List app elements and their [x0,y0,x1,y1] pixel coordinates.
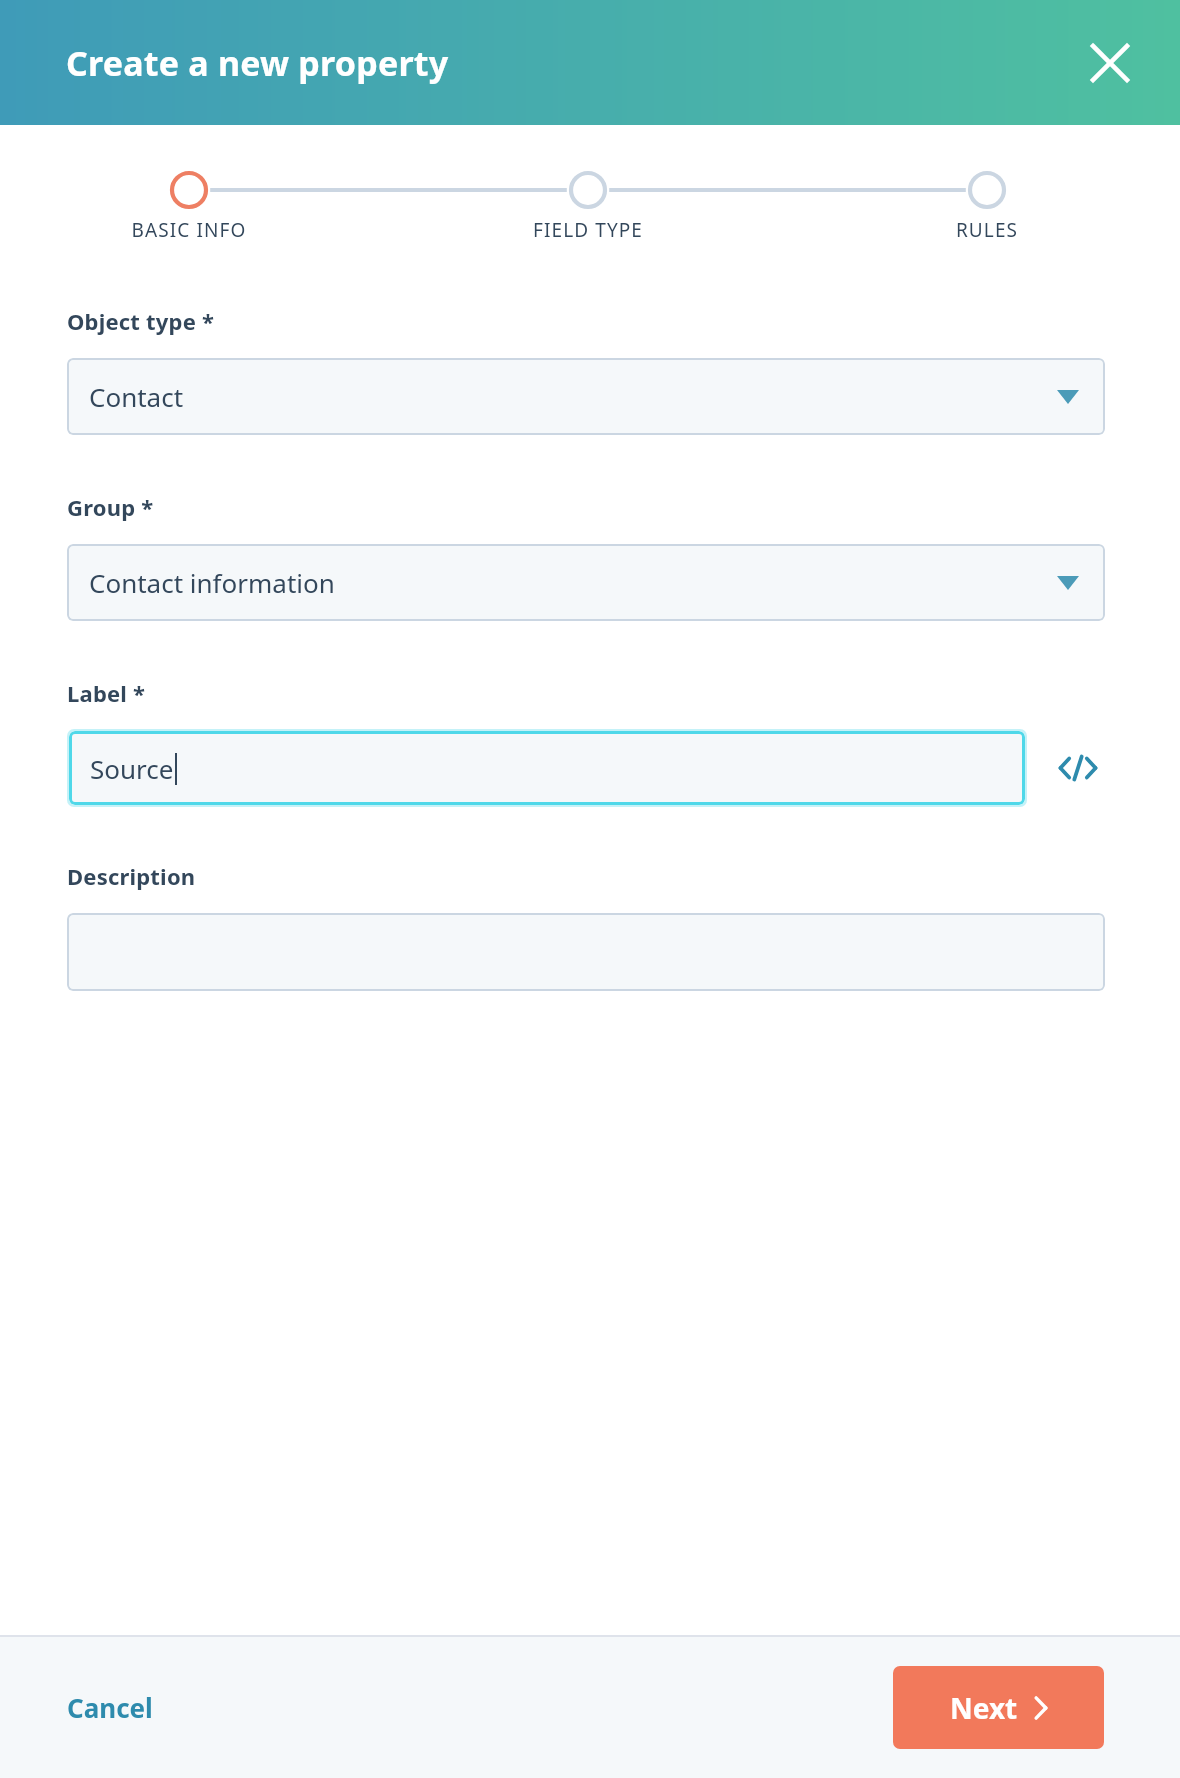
staticText: Object type * [67,306,215,336]
staticText: Next [950,1689,1018,1727]
button[interactable]: RULES [869,217,1105,243]
staticText: RULES [869,217,1105,243]
button[interactable]: Contact [67,358,1105,435]
button[interactable]: Next [893,1666,1104,1749]
staticText: Contact [89,379,1057,414]
staticText: BASIC INFO [71,217,307,243]
button[interactable]: FIELD TYPE [470,217,706,243]
button[interactable]: Close [1082,35,1138,91]
button[interactable]: Insert personalization token [1051,741,1105,795]
button[interactable]: BASIC INFO [71,217,307,243]
button[interactable]: Source [69,731,1025,805]
staticText: Source [90,751,174,786]
staticText: Contact information [89,565,1057,600]
staticText: Description [67,861,196,891]
staticText: Create a new property [66,40,449,86]
button[interactable]: Contact information [67,544,1105,621]
button[interactable]: Cancel [50,1678,170,1737]
staticText: FIELD TYPE [470,217,706,243]
button[interactable] [67,913,1105,991]
staticText: Label * [67,678,146,708]
staticText: Cancel [67,1690,153,1725]
staticText: Group * [67,492,154,522]
